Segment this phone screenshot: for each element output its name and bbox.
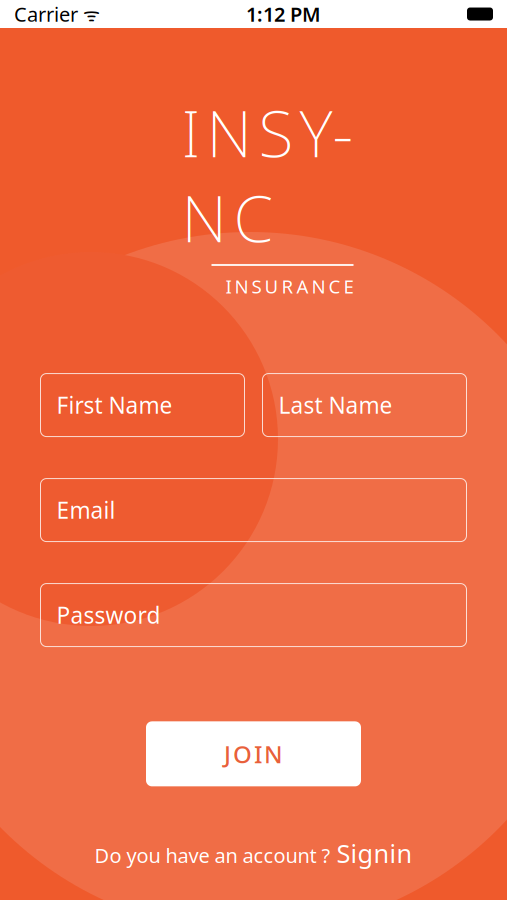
button[interactable]: JOIN	[146, 721, 361, 786]
staticText: ᯤ	[78, 2, 100, 26]
staticText: Last Name	[278, 390, 392, 420]
staticText: 1:12 PM	[246, 1, 321, 27]
staticText: Carrier	[14, 1, 78, 27]
button[interactable]: Email	[40, 479, 466, 542]
staticText: First Name	[56, 390, 172, 420]
button[interactable]: Last Name	[262, 374, 466, 437]
button[interactable]: First Name	[40, 374, 244, 437]
staticText: JOIN	[224, 738, 283, 770]
staticText: Password	[56, 600, 160, 630]
staticText: INSURANCE	[225, 274, 353, 299]
staticText: Signin	[336, 836, 412, 870]
button[interactable]: Do you have an account ?	[94, 836, 412, 870]
staticText: Email	[56, 495, 115, 525]
button[interactable]: Password	[40, 584, 466, 647]
staticText: Do you have an account ?	[94, 842, 330, 869]
staticText: INSYNC	[181, 90, 353, 260]
